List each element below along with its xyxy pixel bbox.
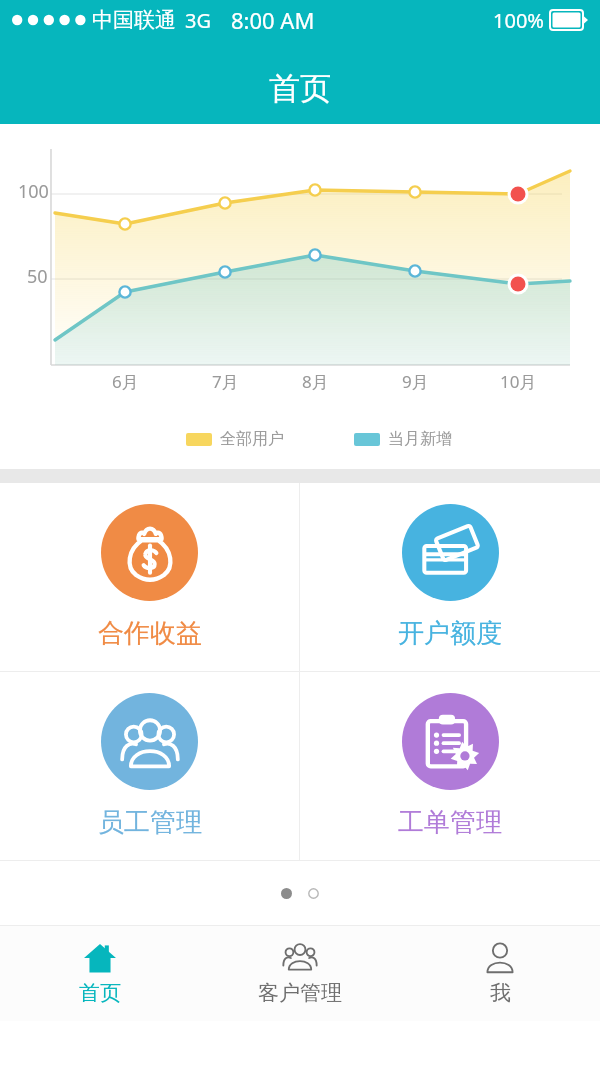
staticText: 全部用户 [220, 429, 284, 449]
staticText: 客户管理 [258, 980, 342, 1006]
staticText: 中国联通 [92, 7, 176, 33]
button[interactable]: 开户额度 [300, 483, 600, 671]
staticText: 合作收益 [98, 617, 202, 650]
staticText: 我 [490, 980, 511, 1006]
staticText: 100% [493, 7, 544, 34]
staticText: 7月 [212, 370, 239, 393]
staticText: 工单管理 [398, 806, 502, 839]
staticText: 当月新增 [388, 429, 452, 449]
staticText: 8:00 AM [231, 5, 315, 35]
staticText: 8月 [302, 370, 329, 393]
staticText: 50 [27, 264, 48, 289]
staticText: 6月 [112, 370, 139, 393]
button[interactable]: 员工管理 [0, 672, 299, 860]
staticText: 首页 [269, 69, 331, 108]
staticText: 员工管理 [98, 806, 202, 839]
button[interactable]: 首页 [0, 926, 200, 1021]
button[interactable]: 工单管理 [300, 672, 600, 860]
staticText: 10月 [500, 370, 537, 393]
staticText: 9月 [402, 370, 429, 393]
staticText: 首页 [79, 980, 121, 1006]
button[interactable]: 客户管理 [200, 926, 400, 1021]
button[interactable]: 合作收益 [0, 483, 299, 671]
staticText: 3G [185, 7, 211, 34]
staticText: 开户额度 [398, 617, 502, 650]
staticText: 100 [18, 179, 49, 204]
button[interactable]: 我 [400, 926, 600, 1021]
